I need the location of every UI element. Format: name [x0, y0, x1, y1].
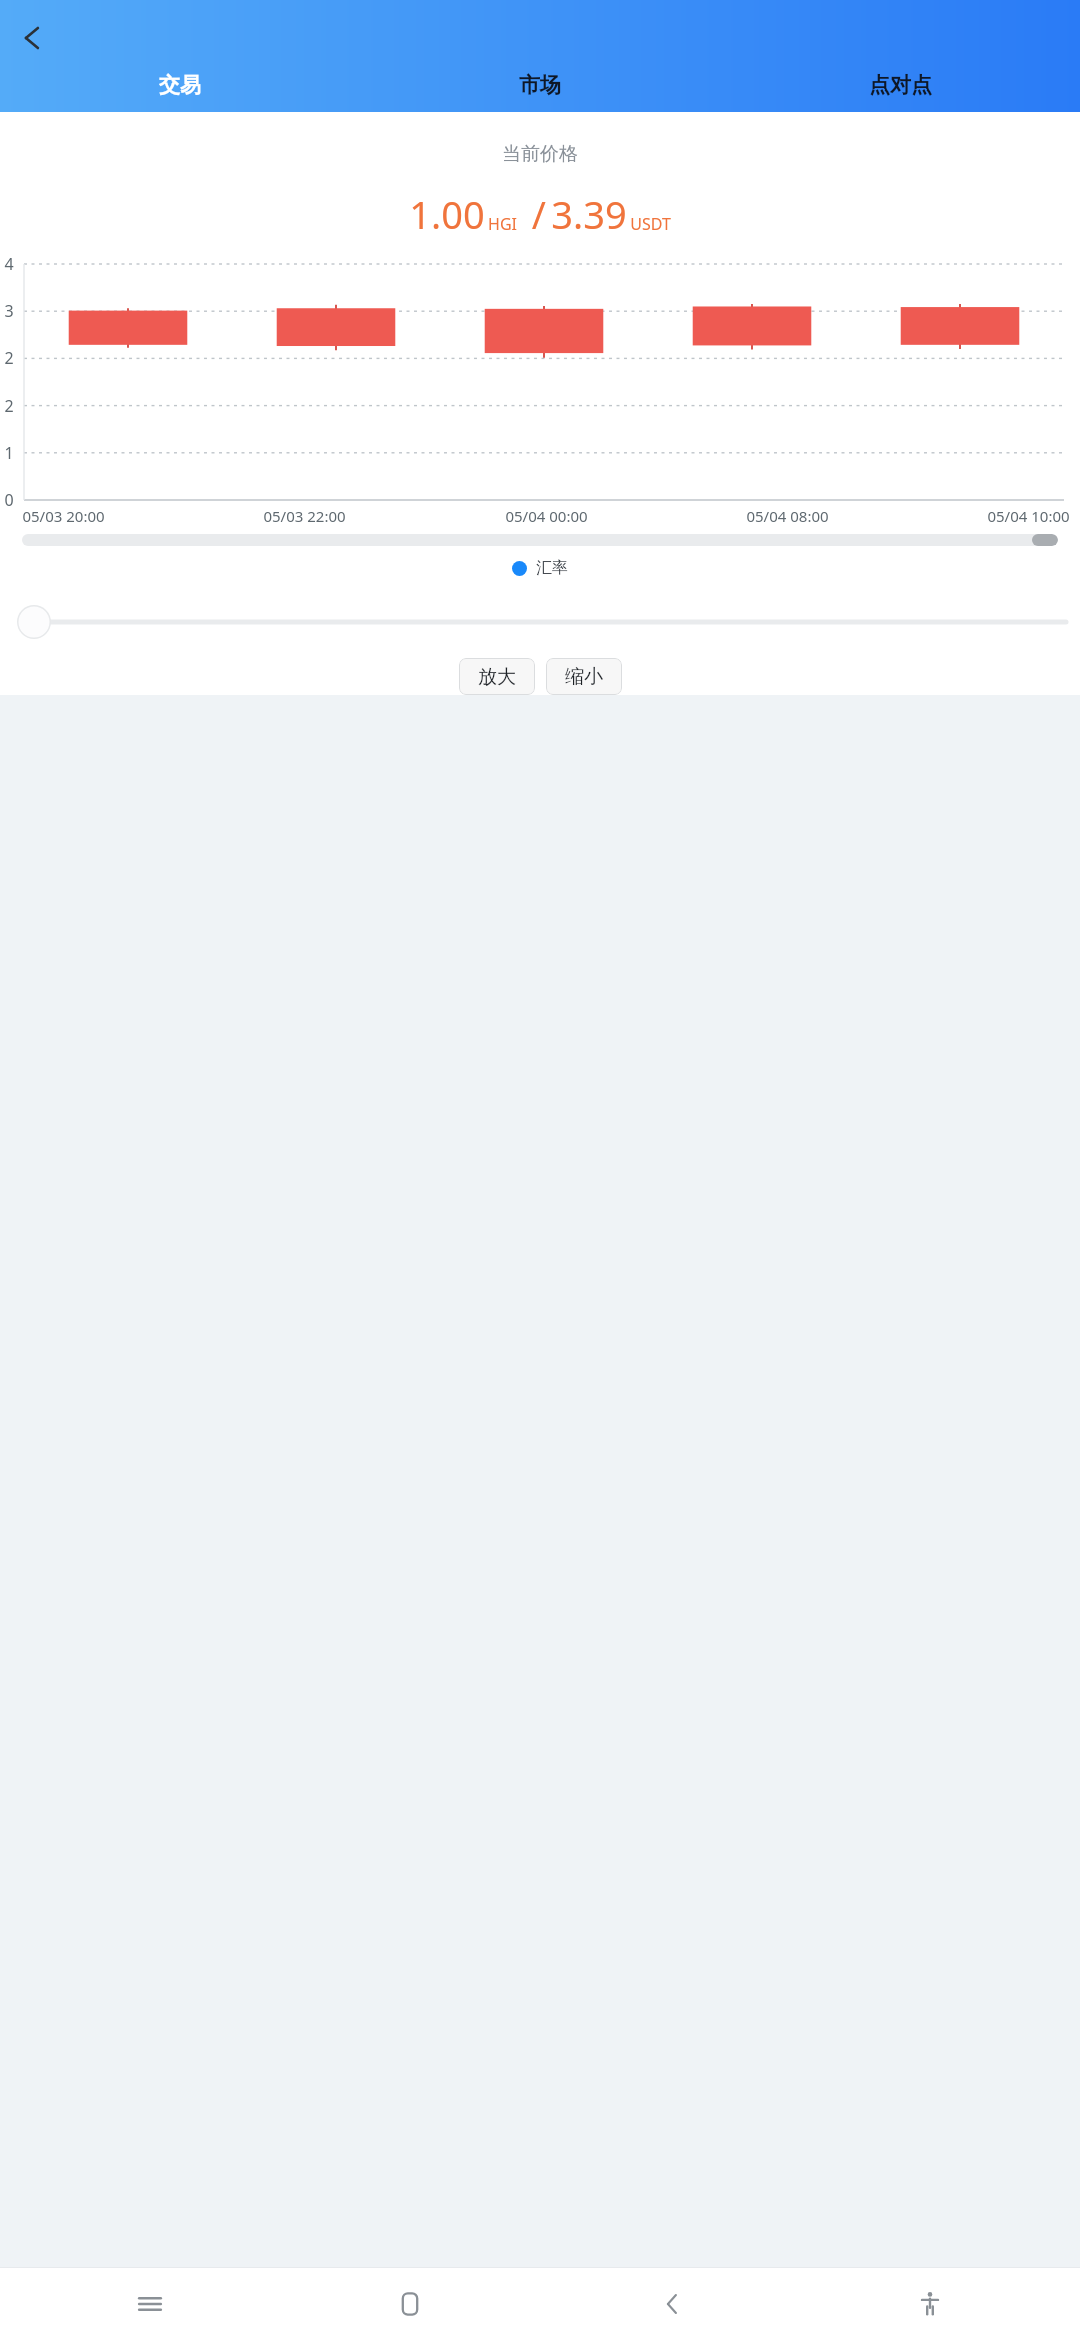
staticText: 1.00 — [409, 188, 485, 240]
staticText: 2 — [4, 347, 14, 369]
button[interactable]: Home — [382, 2276, 438, 2332]
staticText: USDT — [630, 213, 671, 235]
button[interactable]: 缩小 — [546, 658, 622, 695]
button[interactable]: Back — [642, 2276, 698, 2332]
button[interactable]: Recent apps — [122, 2276, 178, 2332]
staticText: 当前价格 — [502, 142, 578, 166]
button[interactable]: Chart scroll — [22, 534, 1058, 546]
staticText: 缩小 — [565, 665, 603, 689]
button[interactable]: 汇率 — [0, 558, 1080, 578]
staticText: 05/04 00:00 — [505, 506, 588, 526]
button[interactable]: 点对点 — [720, 58, 1080, 112]
staticText: 05/03 20:00 — [22, 506, 105, 526]
button[interactable]: Zoom level slider — [0, 600, 1080, 644]
staticText: 放大 — [478, 665, 516, 689]
button[interactable]: 放大 — [459, 658, 535, 695]
button[interactable]: Back — [6, 14, 54, 62]
staticText: 1 — [4, 442, 14, 464]
staticText: 点对点 — [869, 72, 932, 98]
button[interactable]: 市场 — [360, 58, 720, 112]
button[interactable]: Accessibility — [902, 2276, 958, 2332]
staticText: 市场 — [519, 72, 561, 98]
staticText: 3 — [4, 300, 14, 322]
staticText: 汇率 — [536, 558, 568, 578]
staticText: 3.39 — [551, 188, 627, 240]
staticText: / — [517, 188, 551, 240]
staticText: 4 — [4, 253, 14, 275]
staticText: HGI — [488, 213, 517, 235]
staticText: 05/04 10:00 — [987, 506, 1070, 526]
staticText: 05/04 08:00 — [746, 506, 829, 526]
staticText: 交易 — [159, 72, 201, 98]
staticText: 2 — [4, 395, 14, 417]
staticText: 0 — [4, 489, 14, 511]
staticText: 05/03 22:00 — [263, 506, 346, 526]
button[interactable]: 交易 — [0, 58, 360, 112]
